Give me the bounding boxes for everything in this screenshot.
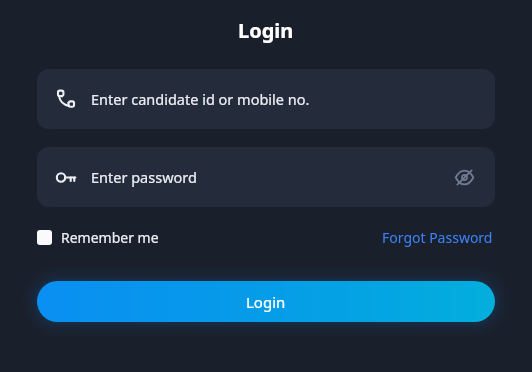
staticText: Remember me: [61, 228, 159, 247]
staticText: Forgot Password: [382, 228, 493, 247]
staticText: Enter candidate id or mobile no.: [91, 89, 310, 109]
button[interactable]: Login: [37, 281, 495, 322]
button[interactable]: Forgot Password: [380, 225, 495, 250]
button[interactable]: Enter candidate id or mobile no.: [37, 69, 495, 129]
staticText: Enter password: [91, 167, 197, 187]
button[interactable]: Enter password: [37, 147, 495, 207]
staticText: Login: [246, 292, 286, 312]
staticText: Login: [238, 17, 294, 44]
button[interactable]: Remember me: [37, 225, 159, 250]
button[interactable]: Show password: [451, 164, 477, 190]
